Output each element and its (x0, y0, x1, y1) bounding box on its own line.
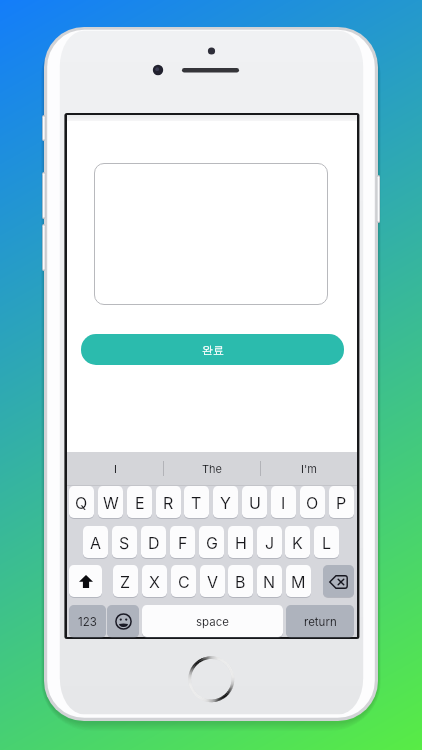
staticText: D (148, 533, 160, 552)
button[interactable]: G (199, 526, 224, 559)
button[interactable]: Y (213, 486, 238, 519)
button[interactable]: E (127, 486, 152, 519)
button[interactable]: I (67, 452, 164, 485)
button[interactable]: H (228, 526, 253, 559)
staticText: 완료 (202, 343, 224, 357)
button[interactable]: return (286, 605, 354, 638)
staticText: F (178, 533, 188, 552)
button[interactable]: W (98, 486, 123, 519)
button[interactable]: M (286, 565, 311, 598)
staticText: I'm (301, 462, 317, 475)
button[interactable]: L (314, 526, 339, 559)
staticText: B (235, 572, 246, 591)
button[interactable]: S (112, 526, 137, 559)
staticText: R (163, 493, 174, 512)
staticText: H (235, 533, 247, 552)
staticText: T (191, 493, 202, 512)
button[interactable]: D (141, 526, 166, 559)
button[interactable]: K (285, 526, 310, 559)
button[interactable]: O (300, 486, 325, 519)
staticText: V (207, 572, 219, 591)
staticText: J (265, 533, 275, 552)
staticText: U (249, 493, 261, 512)
staticText: W (103, 493, 119, 512)
staticText: M (291, 572, 306, 591)
staticText: Q (75, 493, 88, 512)
staticText: C (178, 572, 190, 591)
staticText: O (306, 493, 319, 512)
button[interactable]: N (257, 565, 282, 598)
staticText: 123 (78, 615, 97, 629)
button[interactable]: 완료 (81, 334, 344, 365)
staticText: P (336, 493, 347, 512)
staticText: A (90, 533, 102, 552)
staticText: G (206, 533, 218, 552)
button[interactable] (94, 163, 328, 305)
button[interactable]: Q (69, 486, 94, 519)
button[interactable]: C (171, 565, 196, 598)
button[interactable]: T (184, 486, 209, 519)
staticText: The (202, 462, 223, 475)
staticText: E (135, 493, 145, 512)
staticText: Z (120, 572, 131, 591)
button[interactable]: X (142, 565, 167, 598)
button[interactable]: F (170, 526, 195, 559)
button[interactable]: P (329, 486, 354, 519)
button[interactable]: V (200, 565, 225, 598)
button[interactable]: 123 (69, 605, 106, 638)
button[interactable]: I'm (261, 452, 357, 485)
button[interactable]: Emoji keyboard (107, 605, 139, 638)
staticText: space (196, 615, 229, 629)
staticText: X (149, 572, 160, 591)
staticText: I (281, 493, 286, 512)
staticText: I (114, 462, 117, 475)
button[interactable]: Shift (69, 565, 102, 598)
staticText: return (304, 615, 337, 629)
staticText: S (119, 533, 130, 552)
button[interactable]: The (164, 452, 261, 485)
button[interactable]: B (228, 565, 253, 598)
button[interactable]: R (156, 486, 181, 519)
button[interactable]: space (142, 605, 283, 638)
button[interactable]: I (271, 486, 296, 519)
button[interactable]: U (242, 486, 267, 519)
staticText: K (292, 533, 303, 552)
staticText: L (322, 533, 332, 552)
staticText: Y (220, 493, 231, 512)
button[interactable]: Backspace (323, 565, 354, 598)
button[interactable]: Z (113, 565, 138, 598)
button[interactable]: A (83, 526, 108, 559)
button[interactable]: J (257, 526, 282, 559)
staticText: N (263, 572, 276, 591)
